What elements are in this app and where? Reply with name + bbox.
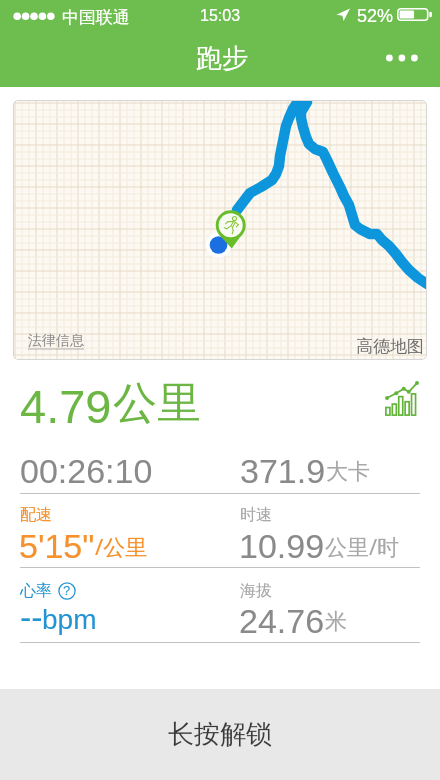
staticText: 高德地图 bbox=[356, 336, 424, 357]
staticText: 00:26:10 bbox=[20, 452, 153, 490]
staticText: 长按解锁 bbox=[168, 718, 272, 751]
staticText: 配速 bbox=[20, 505, 52, 525]
staticText: ? bbox=[63, 583, 71, 598]
staticText: 公里 bbox=[113, 376, 201, 431]
staticText: 公里/时 bbox=[325, 531, 400, 561]
staticText: 52% bbox=[357, 6, 394, 26]
button[interactable]: Statistics bbox=[377, 374, 427, 424]
staticText: 时速 bbox=[240, 505, 272, 525]
button[interactable]: 长按解锁 bbox=[0, 689, 440, 780]
staticText: /公里 bbox=[95, 531, 148, 561]
staticText: -- bbox=[20, 598, 43, 636]
staticText: 24.76 bbox=[239, 602, 325, 640]
button[interactable]: 心率 bbox=[20, 581, 76, 601]
staticText: 海拔 bbox=[240, 581, 272, 601]
staticText: 5'15" bbox=[19, 527, 95, 565]
button[interactable]: More options bbox=[377, 38, 427, 78]
staticText: 米 bbox=[325, 608, 347, 636]
staticText: 跑步 bbox=[196, 42, 248, 75]
staticText: 15:03 bbox=[200, 7, 241, 25]
staticText: 中国联通 bbox=[62, 7, 130, 28]
staticText: 371.9 bbox=[240, 452, 326, 490]
staticText: bpm bbox=[42, 604, 97, 635]
staticText: 大卡 bbox=[326, 458, 370, 486]
staticText: 心率 bbox=[20, 581, 52, 601]
staticText: 10.99 bbox=[239, 527, 325, 565]
button[interactable]: 法律信息 bbox=[28, 332, 84, 350]
staticText: 4.79 bbox=[20, 380, 112, 433]
